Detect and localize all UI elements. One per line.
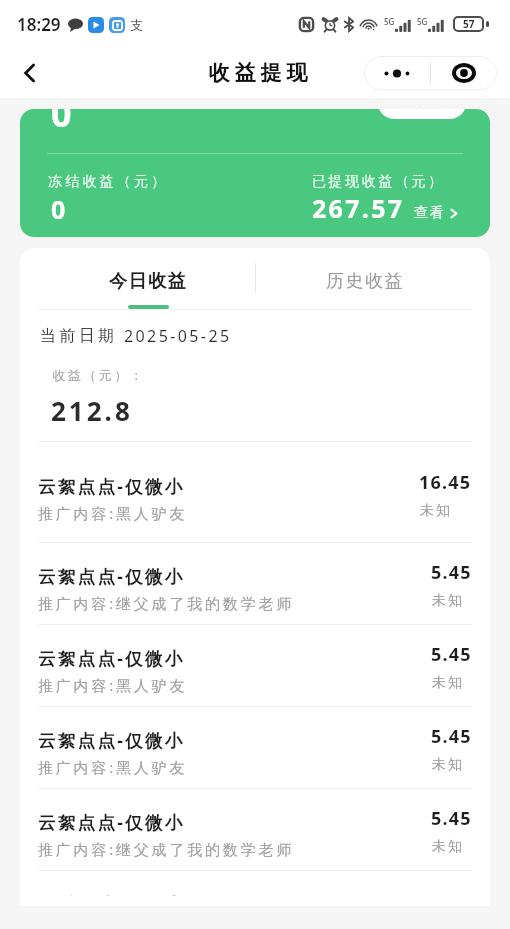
staticText: 云絮点点-仅微小: [38, 564, 185, 588]
staticText: 0: [51, 109, 72, 138]
staticText: 历史收益: [326, 270, 405, 293]
staticText: 查看: [414, 204, 446, 222]
button[interactable]: Back: [8, 51, 52, 95]
button[interactable]: 云絮点点-仅微小: [20, 789, 490, 871]
staticText: 已提现收益（元）: [312, 173, 445, 191]
button[interactable]: Close mini program: [431, 56, 497, 90]
staticText: 212.8: [51, 393, 133, 428]
staticText: 冻结收益（元）: [48, 173, 169, 191]
staticText: 2025-05-25: [124, 325, 232, 347]
staticText: 云絮点点-仅微小: [38, 474, 185, 498]
button[interactable]: 云絮点点-仅微小: [20, 707, 490, 789]
staticText: 推广内容:继父成了我的数学老师: [38, 593, 295, 613]
staticText: 18:29: [17, 13, 61, 36]
staticText: 支: [130, 17, 143, 33]
staticText: 未知: [431, 592, 463, 610]
staticText: 收益提现: [206, 60, 310, 86]
staticText: 收益（元）：: [51, 367, 144, 383]
staticText: 云絮点点-仅微小: [38, 646, 185, 670]
button[interactable]: 历史收益: [258, 248, 473, 309]
button[interactable]: 立即提现: [378, 109, 466, 119]
staticText: 5.45: [431, 724, 472, 749]
staticText: 云絮点点-仅微小: [38, 728, 185, 752]
staticText: 当前日期: [38, 326, 116, 346]
button[interactable]: 云絮点点-仅微小: [20, 543, 490, 625]
staticText: 5G: [417, 16, 428, 27]
staticText: 16.45: [419, 470, 472, 495]
button[interactable]: More options: [364, 56, 430, 90]
staticText: 57: [463, 17, 475, 31]
staticText: 未知: [431, 756, 463, 774]
staticText: 未知: [431, 838, 463, 856]
button[interactable]: 查看: [414, 204, 459, 222]
staticText: 5G: [384, 16, 395, 27]
button[interactable]: 云絮点点-仅微小: [20, 442, 490, 543]
staticText: 未知: [419, 502, 451, 520]
staticText: 今日收益: [109, 270, 188, 293]
staticText: 推广内容:继父成了我的数学老师: [38, 839, 295, 859]
staticText: 5.45: [431, 642, 472, 667]
button[interactable]: 云絮点点-仅微小: [20, 625, 490, 707]
staticText: 0: [51, 192, 66, 226]
staticText: 木瓜悦读-仅微小: [38, 892, 185, 896]
staticText: 云絮点点-仅微小: [38, 810, 185, 834]
staticText: 267.57: [312, 191, 405, 225]
staticText: 未知: [431, 674, 463, 692]
button[interactable]: 今日收益: [41, 248, 256, 309]
staticText: 5.45: [431, 560, 472, 585]
staticText: 推广内容:黑人驴友: [38, 675, 188, 695]
staticText: 5.45: [431, 806, 472, 831]
staticText: 推广内容:黑人驴友: [38, 503, 188, 523]
staticText: 推广内容:黑人驴友: [38, 757, 188, 777]
